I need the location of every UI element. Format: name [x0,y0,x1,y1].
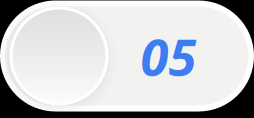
staticText: 05 [140,22,196,90]
